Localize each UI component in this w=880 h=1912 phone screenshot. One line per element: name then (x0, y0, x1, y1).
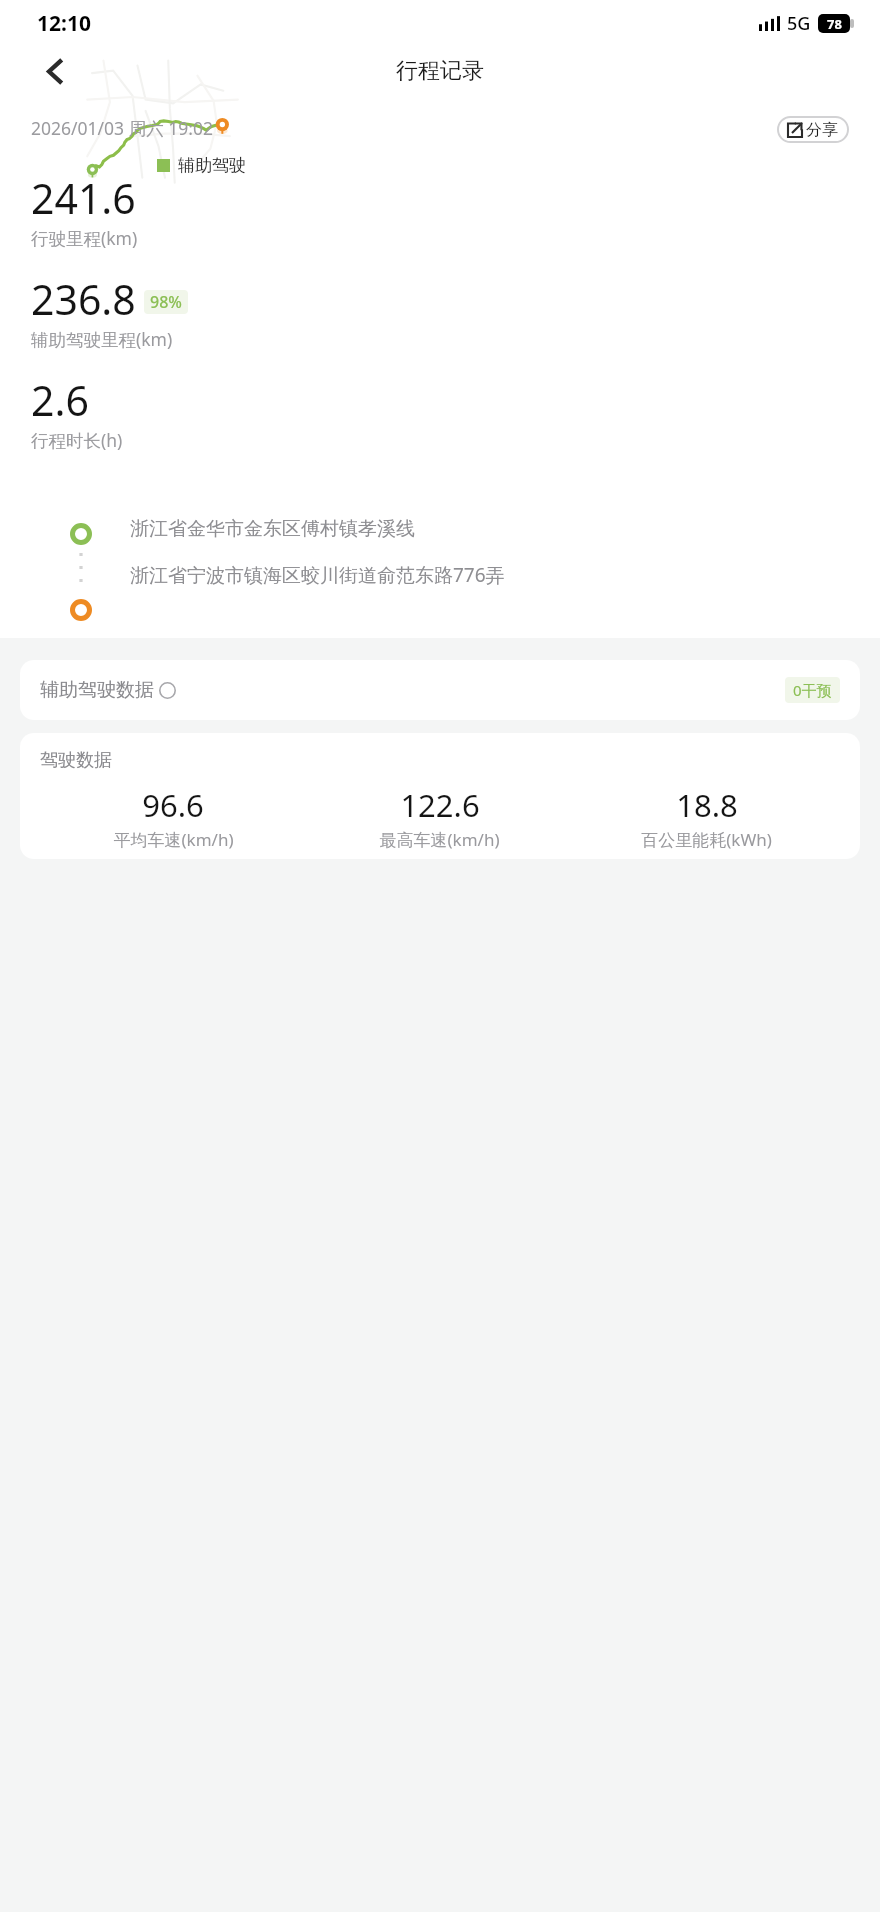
staticText: 浙江省宁波市镇海区蛟川街道俞范东路776弄 (130, 562, 505, 588)
staticText: 行程记录 (396, 57, 484, 85)
staticText: 78 (827, 15, 842, 33)
staticText: 辅助驾驶 (178, 155, 246, 176)
button[interactable]: 辅助驾驶数据 (20, 660, 860, 720)
staticText: 辅助驾驶数据 (40, 678, 154, 702)
staticText: 241.6 (31, 170, 136, 226)
staticText: 驾驶数据 (40, 749, 112, 772)
button[interactable]: 驾驶数据 (20, 733, 860, 859)
button[interactable]: 分享 (777, 116, 849, 143)
staticText: 最高车速(km/h) (379, 828, 500, 851)
staticText: 5G (787, 11, 811, 36)
staticText: 行驶里程(km) (31, 226, 138, 250)
staticText: 行程时长(h) (31, 428, 123, 452)
button[interactable]: 返回 (32, 48, 78, 94)
staticText: 浙江省金华市金东区傅村镇孝溪线 (130, 517, 415, 541)
staticText: 2.6 (31, 372, 89, 428)
staticText: 2026/01/03 周六 19:02 (31, 116, 213, 140)
staticText: 236.8 (31, 271, 136, 327)
staticText: 98% (150, 291, 182, 313)
staticText: 18.8 (676, 784, 738, 826)
staticText: 平均车速(km/h) (113, 828, 234, 851)
staticText: 122.6 (400, 784, 480, 826)
staticText: 0干预 (793, 680, 832, 700)
staticText: 96.6 (142, 784, 204, 826)
staticText: 百公里能耗(kWh) (641, 828, 772, 851)
staticText: 辅助驾驶里程(km) (31, 327, 173, 351)
button[interactable]: 辅助驾驶 (157, 155, 246, 176)
staticText: 分享 (806, 120, 838, 140)
staticText: 12:10 (37, 9, 91, 38)
